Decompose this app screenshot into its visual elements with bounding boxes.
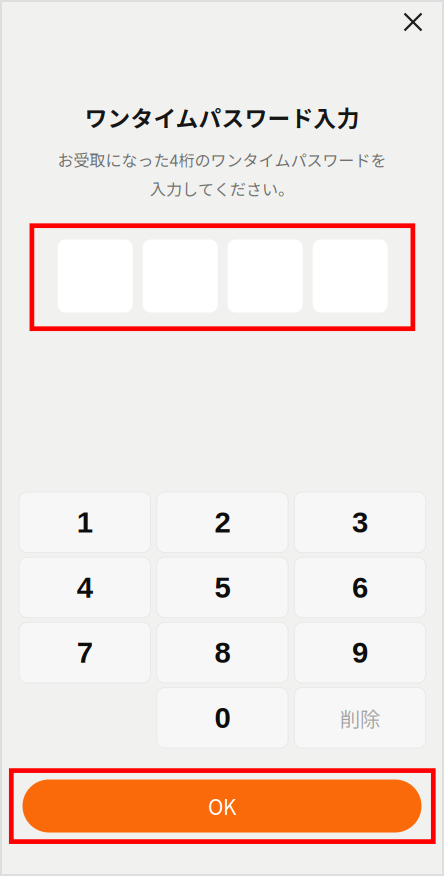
staticText: お受取になった4桁のワンタイムパスワードを (57, 148, 386, 171)
button[interactable]: 0 (157, 688, 288, 748)
button[interactable]: 6 (294, 557, 426, 618)
button[interactable]: 9 (294, 622, 426, 683)
button[interactable]: 8 (157, 622, 288, 683)
button[interactable]: 1 (19, 492, 150, 553)
staticText: 削除 (340, 703, 380, 732)
staticText: 6 (352, 571, 368, 604)
staticText: 4 (77, 571, 93, 604)
staticText: 入力してください。 (150, 177, 294, 200)
staticText: 5 (214, 571, 230, 604)
staticText: ワンタイムパスワード入力 (84, 101, 359, 133)
staticText: 0 (214, 701, 230, 734)
button[interactable]: 閉じる (391, 0, 435, 44)
staticText: 7 (77, 636, 93, 669)
button[interactable]: 5 (157, 557, 288, 618)
staticText: 8 (214, 636, 230, 669)
button[interactable]: 3 (294, 492, 426, 553)
button[interactable]: 4 (19, 557, 150, 618)
staticText: 2 (214, 506, 230, 539)
staticText: OK (208, 791, 236, 821)
button[interactable]: OK (22, 779, 421, 832)
staticText: 1 (77, 506, 93, 539)
staticText: 9 (352, 636, 368, 669)
button[interactable]: 7 (19, 622, 150, 683)
button[interactable]: 削除 (294, 688, 426, 748)
button[interactable]: 2 (157, 492, 288, 553)
staticText: 3 (352, 506, 368, 539)
